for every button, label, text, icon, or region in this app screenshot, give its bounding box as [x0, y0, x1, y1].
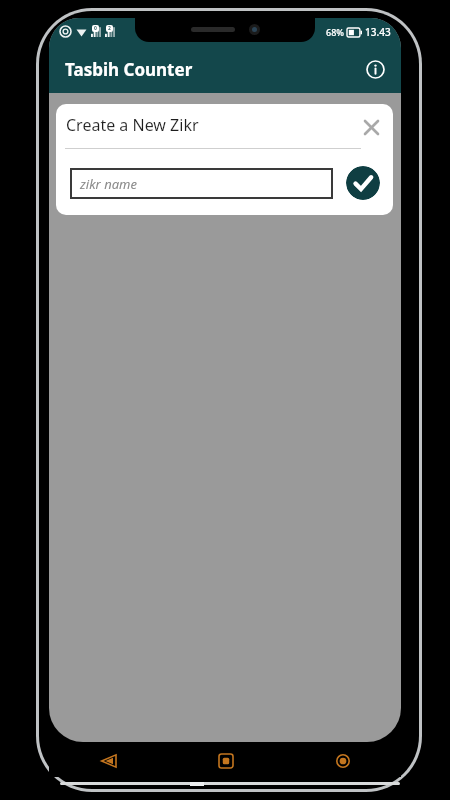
button[interactable]: Close [356, 112, 386, 142]
staticText: Create a New Zikr [66, 114, 199, 136]
staticText: zikr name [80, 175, 137, 193]
button[interactable]: zikr name [71, 169, 332, 198]
button[interactable]: Recent apps [167, 745, 284, 777]
staticText: 68% [326, 26, 344, 38]
staticText: Tasbih Counter [65, 58, 193, 81]
button[interactable]: Back [49, 745, 167, 777]
button[interactable]: Info [357, 51, 393, 87]
staticText: 0 [94, 25, 97, 32]
button[interactable]: Home [284, 745, 401, 777]
button[interactable]: Confirm [346, 166, 380, 200]
staticText: 13.43 [365, 25, 391, 39]
staticText: 2 [108, 25, 111, 32]
